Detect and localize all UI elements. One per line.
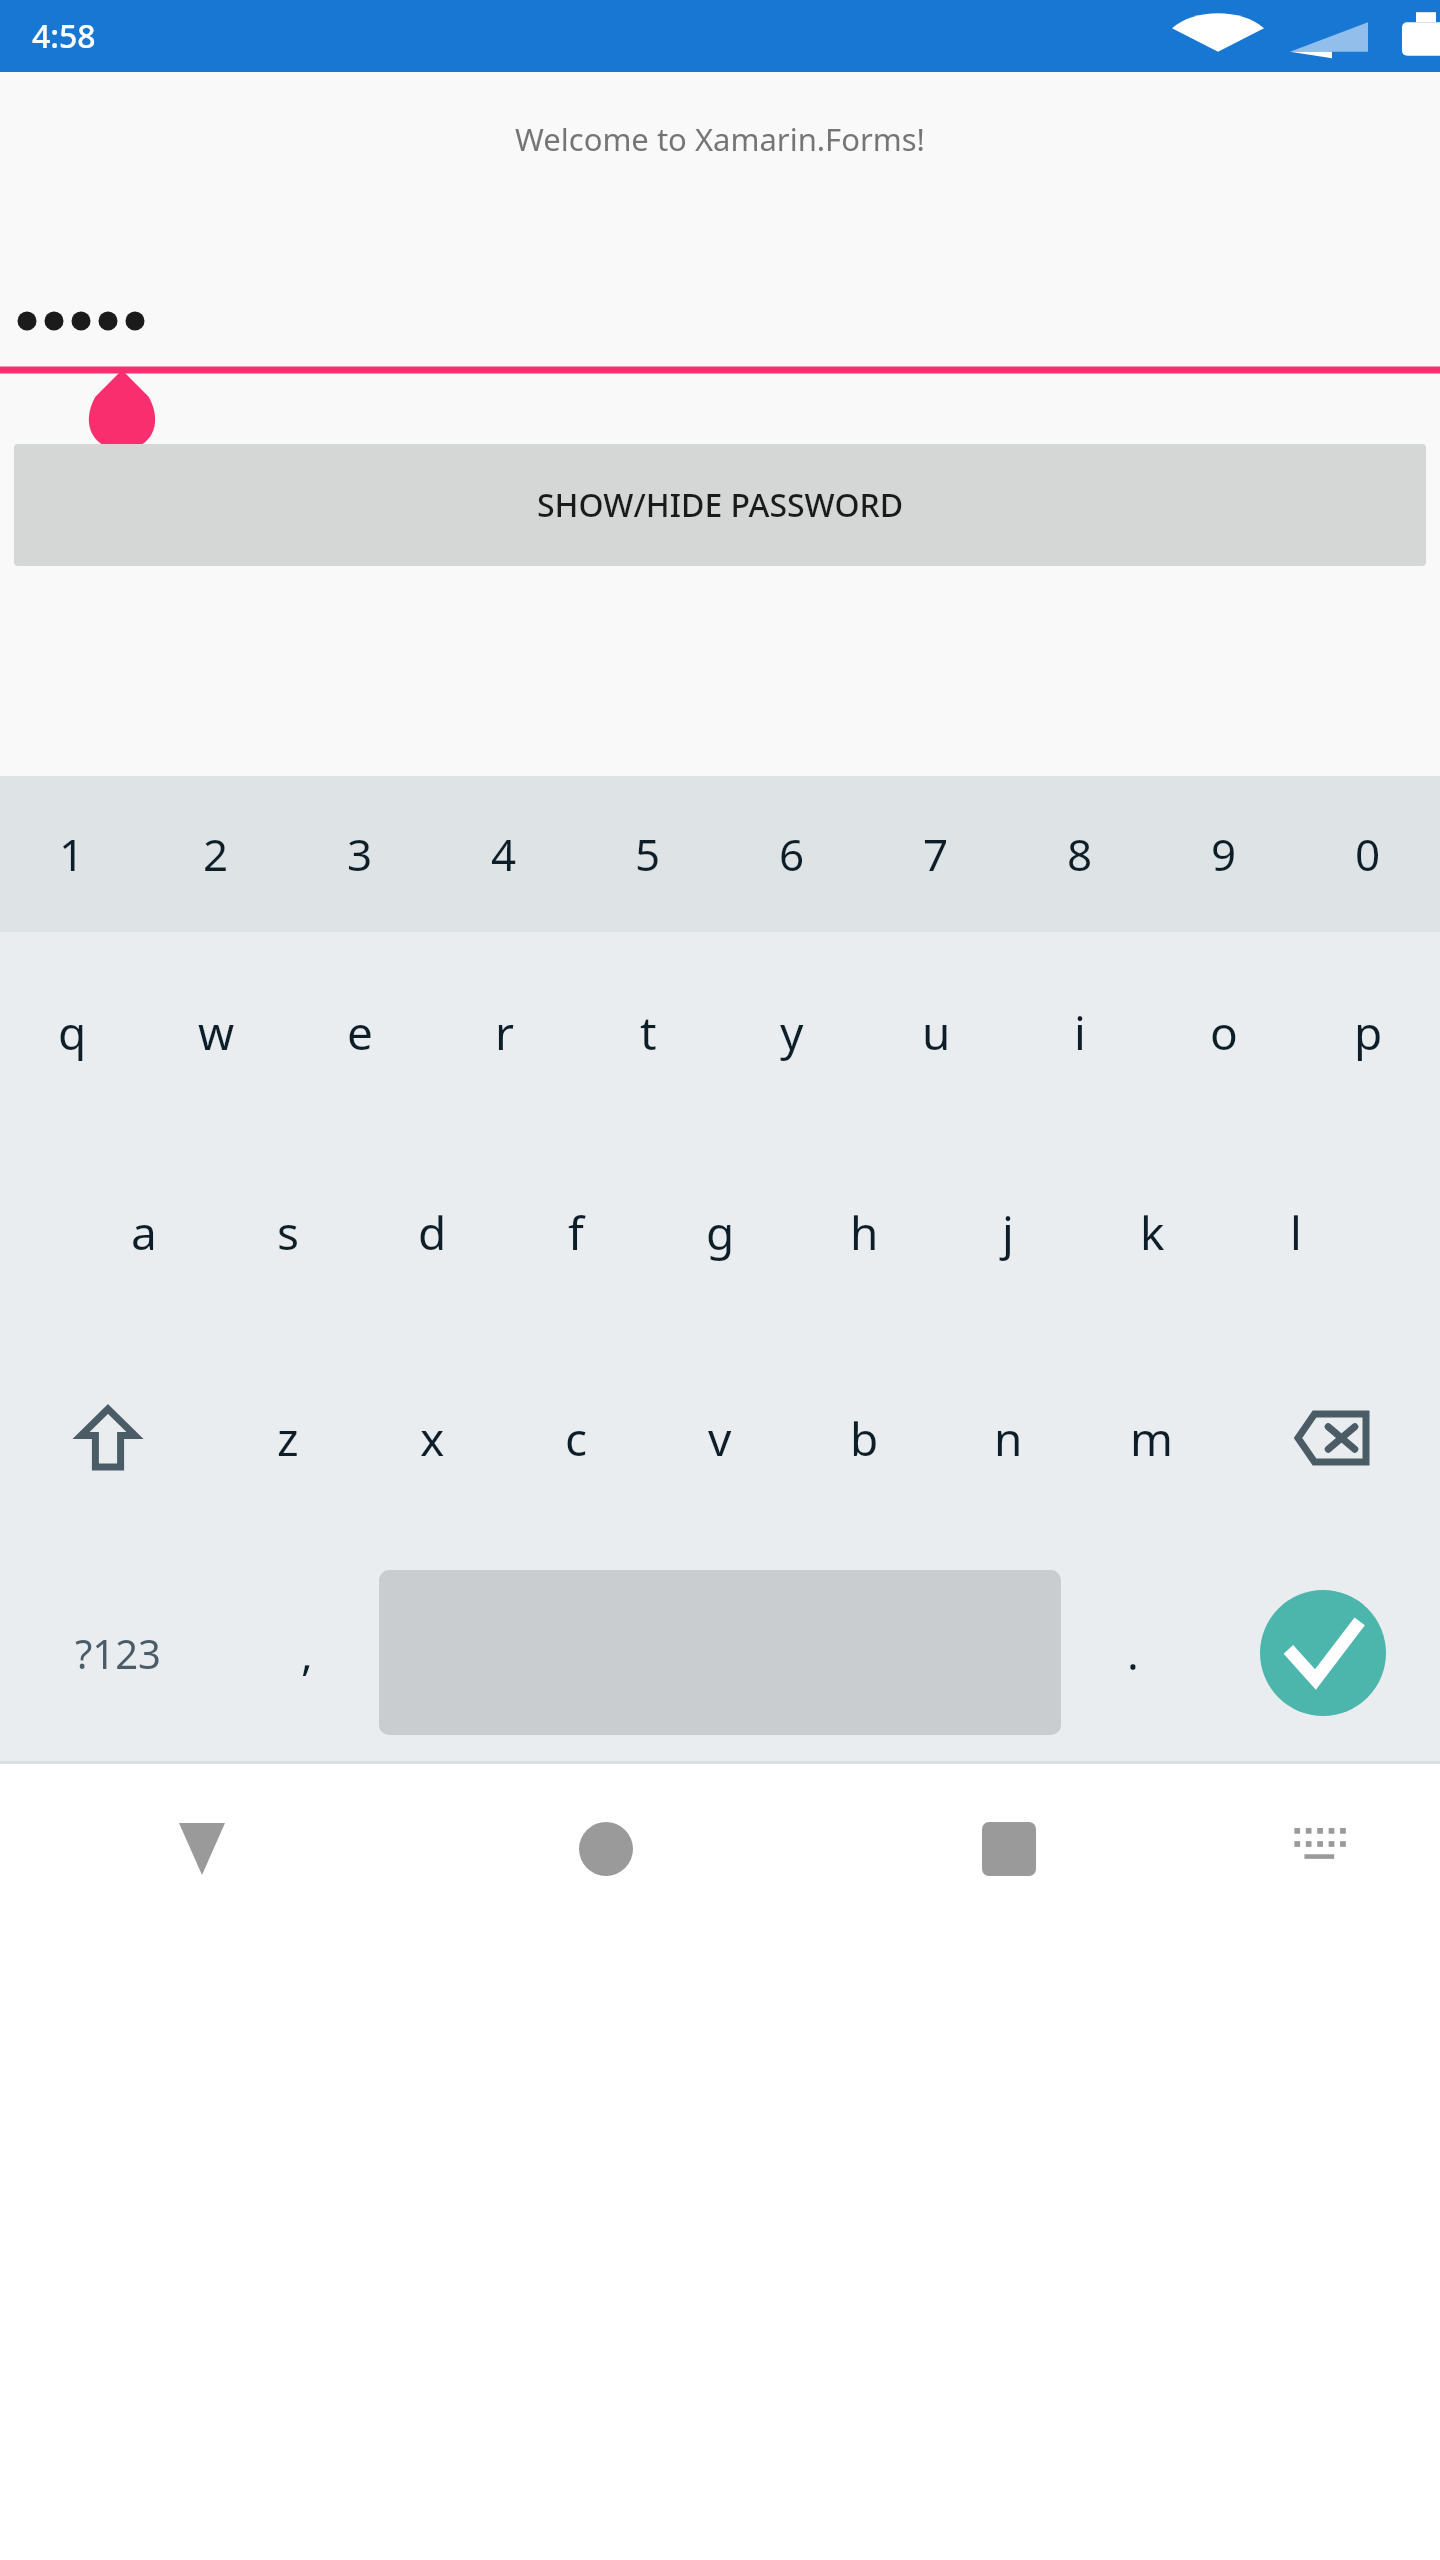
staticText: s [277, 1201, 300, 1264]
button[interactable]: u [864, 932, 1008, 1132]
button[interactable]: 4 [432, 776, 576, 932]
staticText: i [1074, 1001, 1086, 1064]
staticText: n [994, 1407, 1023, 1470]
staticText: ?123 [75, 1626, 161, 1680]
staticText: . [1127, 1623, 1139, 1683]
staticText: 4 [491, 824, 517, 884]
button[interactable]: SHOW/HIDE PASSWORD [14, 444, 1426, 566]
staticText: c [565, 1407, 588, 1470]
button[interactable]: Home [404, 1764, 807, 1934]
staticText: m [1130, 1407, 1174, 1470]
button[interactable]: f [504, 1132, 648, 1332]
button[interactable]: i [1008, 932, 1152, 1132]
button[interactable]: , [235, 1544, 379, 1761]
button[interactable]: 3 [288, 776, 432, 932]
staticText: h [850, 1201, 879, 1264]
button[interactable]: l [1224, 1132, 1368, 1332]
button[interactable]: y [720, 932, 864, 1132]
staticText: x [420, 1407, 445, 1470]
button[interactable]: Recents [807, 1764, 1210, 1934]
button[interactable]: 6 [720, 776, 864, 932]
staticText: p [1354, 1001, 1383, 1064]
button[interactable]: 8 [1008, 776, 1152, 932]
button[interactable]: m [1080, 1332, 1224, 1544]
button[interactable]: Switch keyboard [1210, 1764, 1440, 1934]
staticText: w [198, 1001, 235, 1064]
staticText: g [706, 1201, 735, 1264]
staticText: z [277, 1407, 299, 1470]
button[interactable]: 2 [144, 776, 288, 932]
button[interactable]: . [1061, 1544, 1205, 1761]
staticText: 3 [347, 824, 373, 884]
staticText: 9 [1211, 824, 1237, 884]
staticText: f [568, 1201, 584, 1264]
staticText: Welcome to Xamarin.Forms! [0, 118, 1440, 160]
button[interactable]: Hide keyboard [0, 1764, 404, 1934]
staticText: o [1210, 1001, 1238, 1064]
staticText: q [58, 1001, 87, 1064]
staticText: d [418, 1201, 447, 1264]
button[interactable]: 1 [0, 776, 144, 932]
button[interactable]: g [648, 1132, 792, 1332]
staticText: 7 [923, 824, 949, 884]
button[interactable]: a [72, 1132, 216, 1332]
button[interactable]: n [936, 1332, 1080, 1544]
button[interactable]: c [504, 1332, 648, 1544]
staticText: y [780, 1001, 804, 1064]
staticText: r [495, 1001, 514, 1064]
staticText: 8 [1067, 824, 1093, 884]
staticText: j [1002, 1201, 1014, 1264]
staticText: v [708, 1407, 732, 1470]
button[interactable]: k [1080, 1132, 1224, 1332]
button[interactable]: p [1296, 932, 1440, 1132]
button[interactable]: s [216, 1132, 360, 1332]
button[interactable]: t [576, 932, 720, 1132]
staticText: 6 [779, 824, 805, 884]
staticText: a [131, 1201, 157, 1264]
button[interactable]: j [936, 1132, 1080, 1332]
button[interactable]: x [360, 1332, 504, 1544]
staticText: e [347, 1001, 373, 1064]
staticText: , [301, 1623, 313, 1683]
button[interactable]: v [648, 1332, 792, 1544]
staticText: k [1140, 1201, 1165, 1264]
staticText: 0 [1355, 824, 1381, 884]
button[interactable]: 9 [1152, 776, 1296, 932]
button[interactable]: 5 [576, 776, 720, 932]
staticText: SHOW/HIDE PASSWORD [537, 483, 904, 527]
staticText: u [922, 1001, 951, 1064]
button[interactable]: o [1152, 932, 1296, 1132]
staticText: 2 [203, 824, 229, 884]
button[interactable]: Shift [0, 1332, 216, 1544]
button[interactable]: r [432, 932, 576, 1132]
staticText: l [1290, 1201, 1302, 1264]
staticText: b [850, 1407, 879, 1470]
button[interactable]: b [792, 1332, 936, 1544]
button[interactable]: 0 [1296, 776, 1440, 932]
button[interactable]: z [216, 1332, 360, 1544]
button[interactable]: Backspace [1224, 1332, 1440, 1544]
button[interactable]: q [0, 932, 144, 1132]
button[interactable]: d [360, 1132, 504, 1332]
button[interactable]: h [792, 1132, 936, 1332]
button[interactable]: w [144, 932, 288, 1132]
button[interactable]: Enter [1205, 1544, 1440, 1761]
button[interactable]: e [288, 932, 432, 1132]
button[interactable]: ?123 [0, 1544, 235, 1761]
staticText: 5 [635, 824, 661, 884]
button[interactable]: 7 [864, 776, 1008, 932]
staticText: 4:58 [32, 14, 96, 58]
staticText: 1 [59, 824, 85, 884]
staticText: t [640, 1001, 657, 1064]
